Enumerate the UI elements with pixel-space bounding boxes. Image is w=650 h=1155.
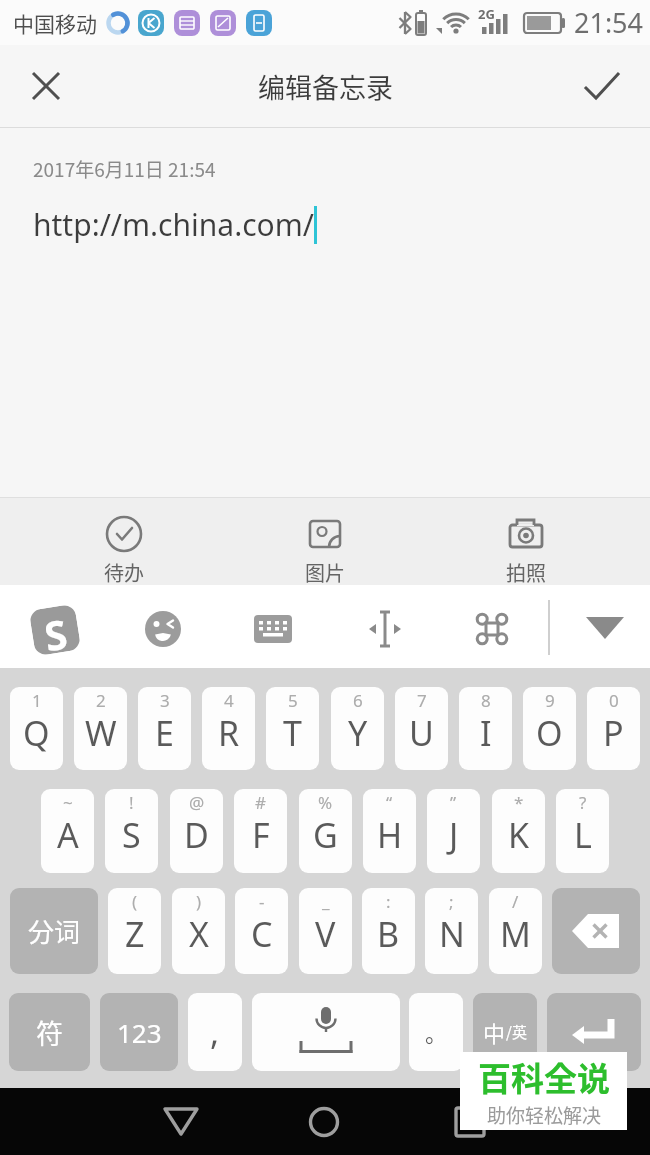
staticText: 8 (481, 689, 491, 712)
button[interactable]: 待办 (24, 498, 224, 585)
button[interactable]: 0 (587, 687, 640, 770)
staticText: S (122, 812, 141, 858)
button[interactable]: 2 (74, 687, 127, 770)
button[interactable]: @ (170, 789, 223, 873)
staticText: 符 (36, 1013, 63, 1052)
staticText: ! (129, 791, 134, 814)
staticText: / (512, 890, 519, 913)
button[interactable]: 5 (266, 687, 319, 770)
staticText: 图片 (305, 558, 345, 585)
staticText: “ (386, 791, 393, 814)
staticText: K (508, 812, 530, 858)
button[interactable]: 拍照 (425, 498, 626, 585)
staticText: 2G (478, 5, 495, 23)
staticText: - (259, 890, 265, 913)
staticText: 助你轻松解决 (487, 1101, 602, 1129)
button[interactable]: ? (556, 789, 609, 873)
button[interactable]: # (234, 789, 287, 873)
button[interactable]: 符 (9, 993, 90, 1071)
button[interactable]: % (299, 789, 352, 873)
staticText: ? (579, 791, 587, 814)
button[interactable]: 。 (409, 993, 463, 1071)
button[interactable]: / (489, 888, 542, 974)
staticText: L (574, 812, 592, 858)
button[interactable] (547, 993, 641, 1071)
button[interactable]: 7 (395, 687, 448, 770)
staticText: 1 (32, 689, 42, 712)
button[interactable] (252, 993, 400, 1071)
staticText: % (318, 791, 333, 814)
staticText: E (155, 710, 174, 756)
button[interactable]: * (492, 789, 545, 873)
staticText: N (439, 911, 465, 957)
button[interactable]: : (362, 888, 415, 974)
staticText: 0 (609, 689, 619, 712)
staticText: U (409, 710, 434, 756)
staticText: ; (449, 890, 454, 913)
staticText: ) (196, 890, 202, 913)
staticText: 待办 (104, 558, 144, 585)
staticText: 2 (96, 689, 106, 712)
staticText: , (210, 1009, 220, 1055)
button[interactable] (473, 609, 511, 649)
button[interactable]: ~ (41, 789, 94, 873)
staticText: _ (322, 890, 330, 913)
staticText: M (500, 911, 531, 957)
button[interactable]: 1 (10, 687, 63, 770)
button[interactable]: 123 (100, 993, 178, 1071)
staticText: T (283, 710, 302, 756)
button[interactable] (584, 71, 620, 101)
button[interactable]: ! (105, 789, 158, 873)
staticText: 4 (224, 689, 234, 712)
button[interactable]: ( (108, 888, 161, 974)
staticText: B (377, 911, 400, 957)
staticText: 5 (288, 689, 298, 712)
button[interactable] (145, 611, 181, 647)
staticText: J (449, 812, 459, 858)
button[interactable]: _ (299, 888, 352, 974)
button[interactable]: 图片 (224, 498, 425, 585)
button[interactable]: - (235, 888, 288, 974)
staticText: ” (450, 791, 457, 814)
staticText: I (480, 710, 492, 756)
button[interactable]: , (188, 993, 242, 1071)
button[interactable]: ) (172, 888, 225, 974)
button[interactable] (308, 1106, 340, 1138)
staticText: 9 (545, 689, 555, 712)
staticText: 分词 (28, 912, 81, 950)
button[interactable]: ; (425, 888, 478, 974)
button[interactable] (32, 72, 60, 100)
staticText: P (603, 710, 624, 756)
staticText: A (57, 812, 79, 858)
button[interactable]: 中 (473, 993, 537, 1071)
button[interactable]: “ (363, 789, 416, 873)
staticText: ( (132, 890, 138, 913)
button[interactable]: ” (427, 789, 480, 873)
staticText: R (218, 710, 240, 756)
staticText: 6 (353, 689, 363, 712)
button[interactable]: 8 (459, 687, 512, 770)
staticText: 拍照 (506, 558, 546, 585)
button[interactable]: 9 (523, 687, 576, 770)
button[interactable]: S (29, 604, 81, 656)
staticText: Q (23, 710, 50, 756)
button[interactable] (366, 609, 404, 649)
staticText: # (255, 791, 266, 814)
button[interactable] (454, 1106, 486, 1138)
button[interactable]: 4 (202, 687, 255, 770)
button[interactable]: 6 (331, 687, 384, 770)
staticText: F (252, 812, 270, 858)
staticText: Z (125, 911, 145, 957)
button[interactable] (586, 617, 624, 647)
button[interactable]: 3 (138, 687, 191, 770)
staticText: 21:54 (574, 4, 644, 41)
staticText: D (184, 812, 209, 858)
staticText: 中国移动 (13, 8, 97, 38)
button[interactable] (162, 1106, 200, 1138)
staticText: : (386, 890, 391, 913)
staticText: @ (189, 791, 205, 814)
staticText: /英 (506, 1021, 527, 1043)
button[interactable] (552, 888, 640, 974)
button[interactable]: 分词 (10, 888, 98, 974)
button[interactable] (254, 613, 292, 645)
